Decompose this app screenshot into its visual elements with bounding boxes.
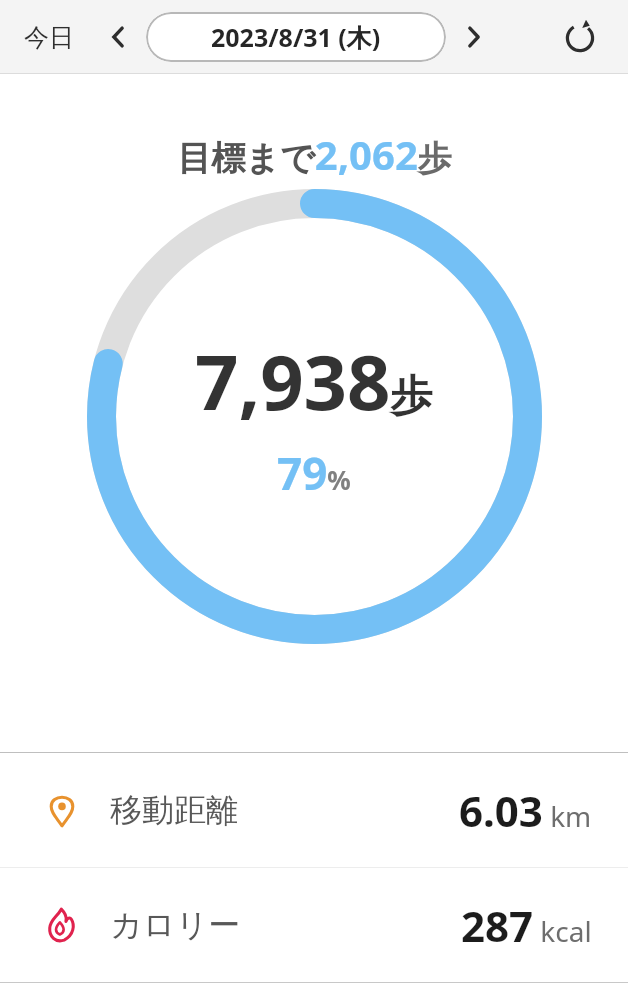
- staticText: 移動距離: [110, 790, 238, 830]
- button[interactable]: 2023/8/31 (木): [146, 12, 446, 62]
- button[interactable]: 前の日: [96, 15, 140, 59]
- staticText: 6.03 km: [459, 782, 592, 839]
- staticText: 79%: [277, 443, 351, 503]
- staticText: 287 kcal: [461, 897, 592, 954]
- staticText: 目標まで2,062歩: [177, 127, 452, 181]
- button[interactable]: 今日: [18, 16, 80, 59]
- button[interactable]: 次の日: [452, 15, 496, 59]
- staticText: 7,938歩: [195, 329, 433, 433]
- button[interactable]: 更新: [554, 11, 606, 63]
- other: カロリー: [40, 903, 84, 947]
- button[interactable]: 移動距離: [0, 753, 628, 867]
- staticText: 今日: [24, 22, 74, 53]
- staticText: カロリー: [110, 905, 241, 945]
- button[interactable]: カロリー: [0, 868, 628, 982]
- staticText: 2023/8/31 (木): [211, 20, 381, 54]
- other: 移動距離: [40, 788, 84, 832]
